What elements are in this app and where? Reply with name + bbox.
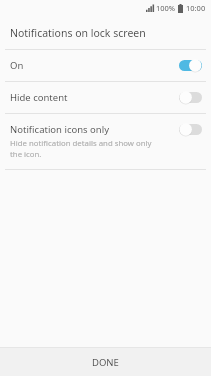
button[interactable]: DONE (0, 348, 211, 376)
staticText: 100% (156, 3, 176, 13)
button[interactable]: Hide content (0, 82, 211, 113)
button[interactable]: Notification icons only (0, 114, 211, 169)
staticText: 10:00 (186, 3, 206, 13)
staticText: Notification icons only (10, 123, 109, 136)
staticText: Hide notification details and show only … (10, 138, 159, 160)
staticText: Hide content (10, 91, 68, 104)
staticText: DONE (92, 356, 119, 369)
staticText: On (10, 59, 24, 72)
button[interactable]: On (0, 50, 211, 81)
staticText: Notifications on lock screen (10, 26, 146, 40)
